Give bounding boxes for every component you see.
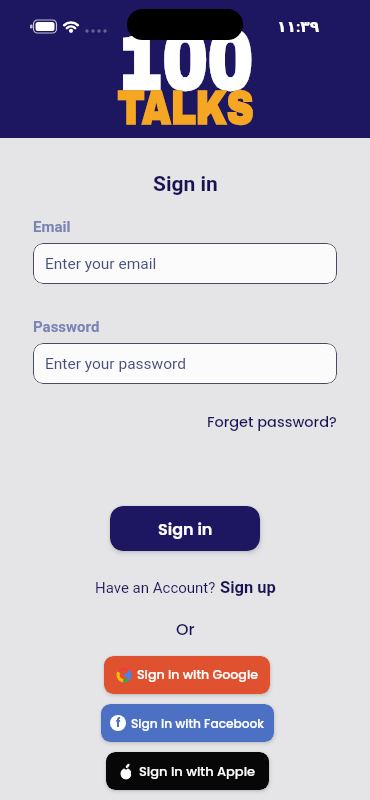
- button[interactable]: Enter your email: [33, 243, 337, 284]
- button[interactable]: Forget password?: [207, 412, 337, 432]
- staticText: Email: [33, 218, 71, 236]
- staticText: Sign in: [153, 172, 218, 197]
- staticText: Or: [176, 618, 195, 640]
- staticText: Sign in: [158, 518, 213, 540]
- staticText: TALKS: [117, 82, 253, 134]
- staticText: 100: [117, 14, 254, 106]
- button[interactable]: Sign in: [110, 506, 260, 551]
- staticText: Sign up: [220, 578, 276, 597]
- button[interactable]: f: [101, 704, 274, 742]
- button[interactable]: Sign in with Apple: [106, 752, 269, 790]
- button[interactable]: Enter your password: [33, 343, 337, 384]
- staticText: f: [116, 715, 121, 730]
- staticText: Password: [33, 318, 100, 336]
- staticText: Enter your password: [45, 355, 186, 373]
- staticText: Sign in with Google: [137, 666, 258, 684]
- button[interactable]: Sign in with Google: [104, 656, 270, 694]
- staticText: ١١:٣٩: [277, 18, 320, 36]
- staticText: Sign in with Apple: [139, 762, 256, 780]
- staticText: Forget password?: [207, 412, 337, 432]
- staticText: Enter your email: [45, 255, 157, 273]
- staticText: Have an Account?: [95, 579, 220, 597]
- staticText: Sign in with Facebook: [131, 715, 265, 732]
- button[interactable]: Have an Account?: [95, 578, 276, 597]
